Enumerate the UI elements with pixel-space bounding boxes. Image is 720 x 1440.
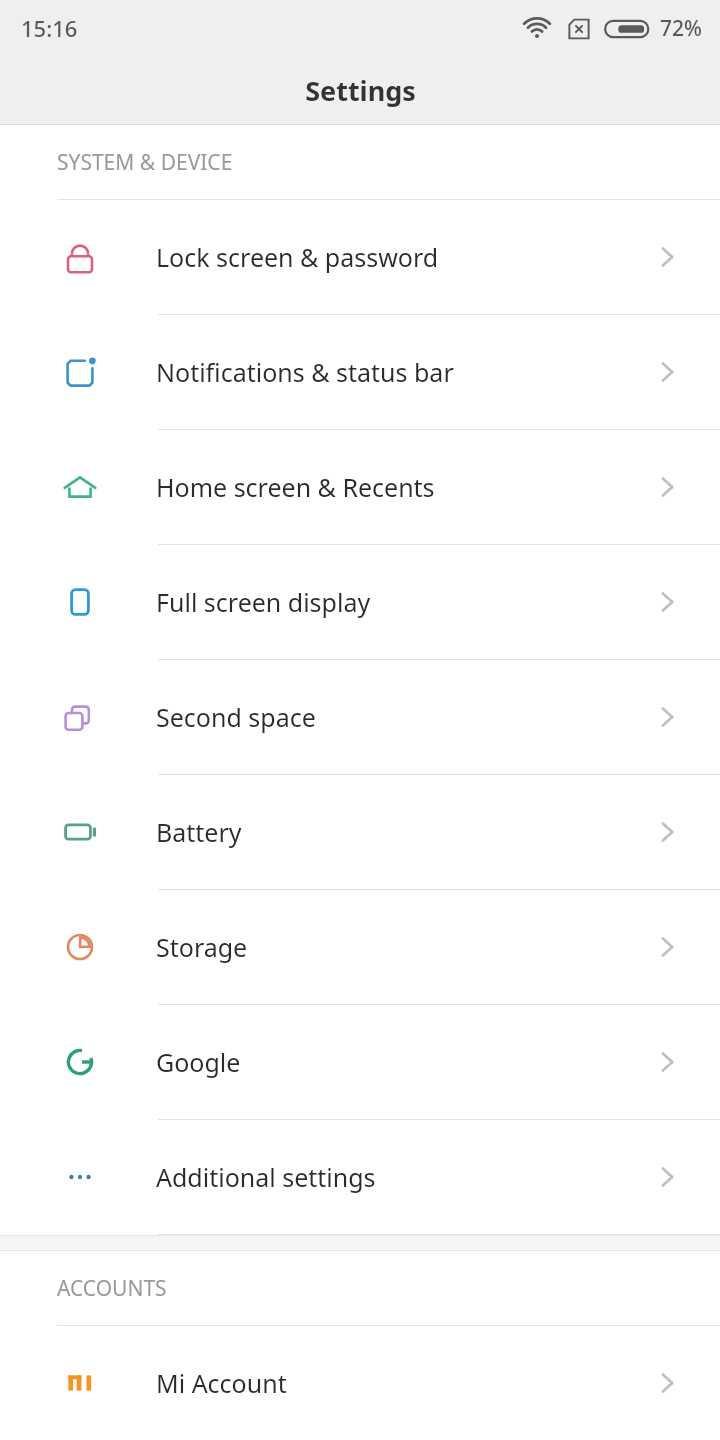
staticText: Second space [156,700,316,734]
button[interactable]: Home screen & Recents [0,430,720,545]
staticText: Storage [156,930,248,964]
staticText: 15:16 [21,13,78,43]
staticText: Battery [156,815,242,849]
button[interactable]: Storage [0,890,720,1005]
staticText: Home screen & Recents [156,470,435,504]
button[interactable]: Google [0,1005,720,1120]
button[interactable]: Second space [0,660,720,775]
staticText: Settings [305,72,416,109]
staticText: 72% [660,14,702,43]
staticText: Notifications & status bar [156,355,454,389]
button[interactable]: Battery [0,775,720,890]
button[interactable]: Additional settings [0,1120,720,1235]
staticText: Google [156,1045,241,1079]
staticText: Lock screen & password [156,240,439,274]
button[interactable]: Mi Account [0,1326,720,1440]
button[interactable]: Lock screen & password [0,200,720,315]
staticText: Full screen display [156,585,371,619]
staticText: SYSTEM & DEVICE [57,148,233,177]
button[interactable]: Notifications & status bar [0,315,720,430]
staticText: Additional settings [156,1160,376,1194]
staticText: ACCOUNTS [57,1274,167,1303]
staticText: Mi Account [156,1366,287,1400]
button[interactable]: Full screen display [0,545,720,660]
